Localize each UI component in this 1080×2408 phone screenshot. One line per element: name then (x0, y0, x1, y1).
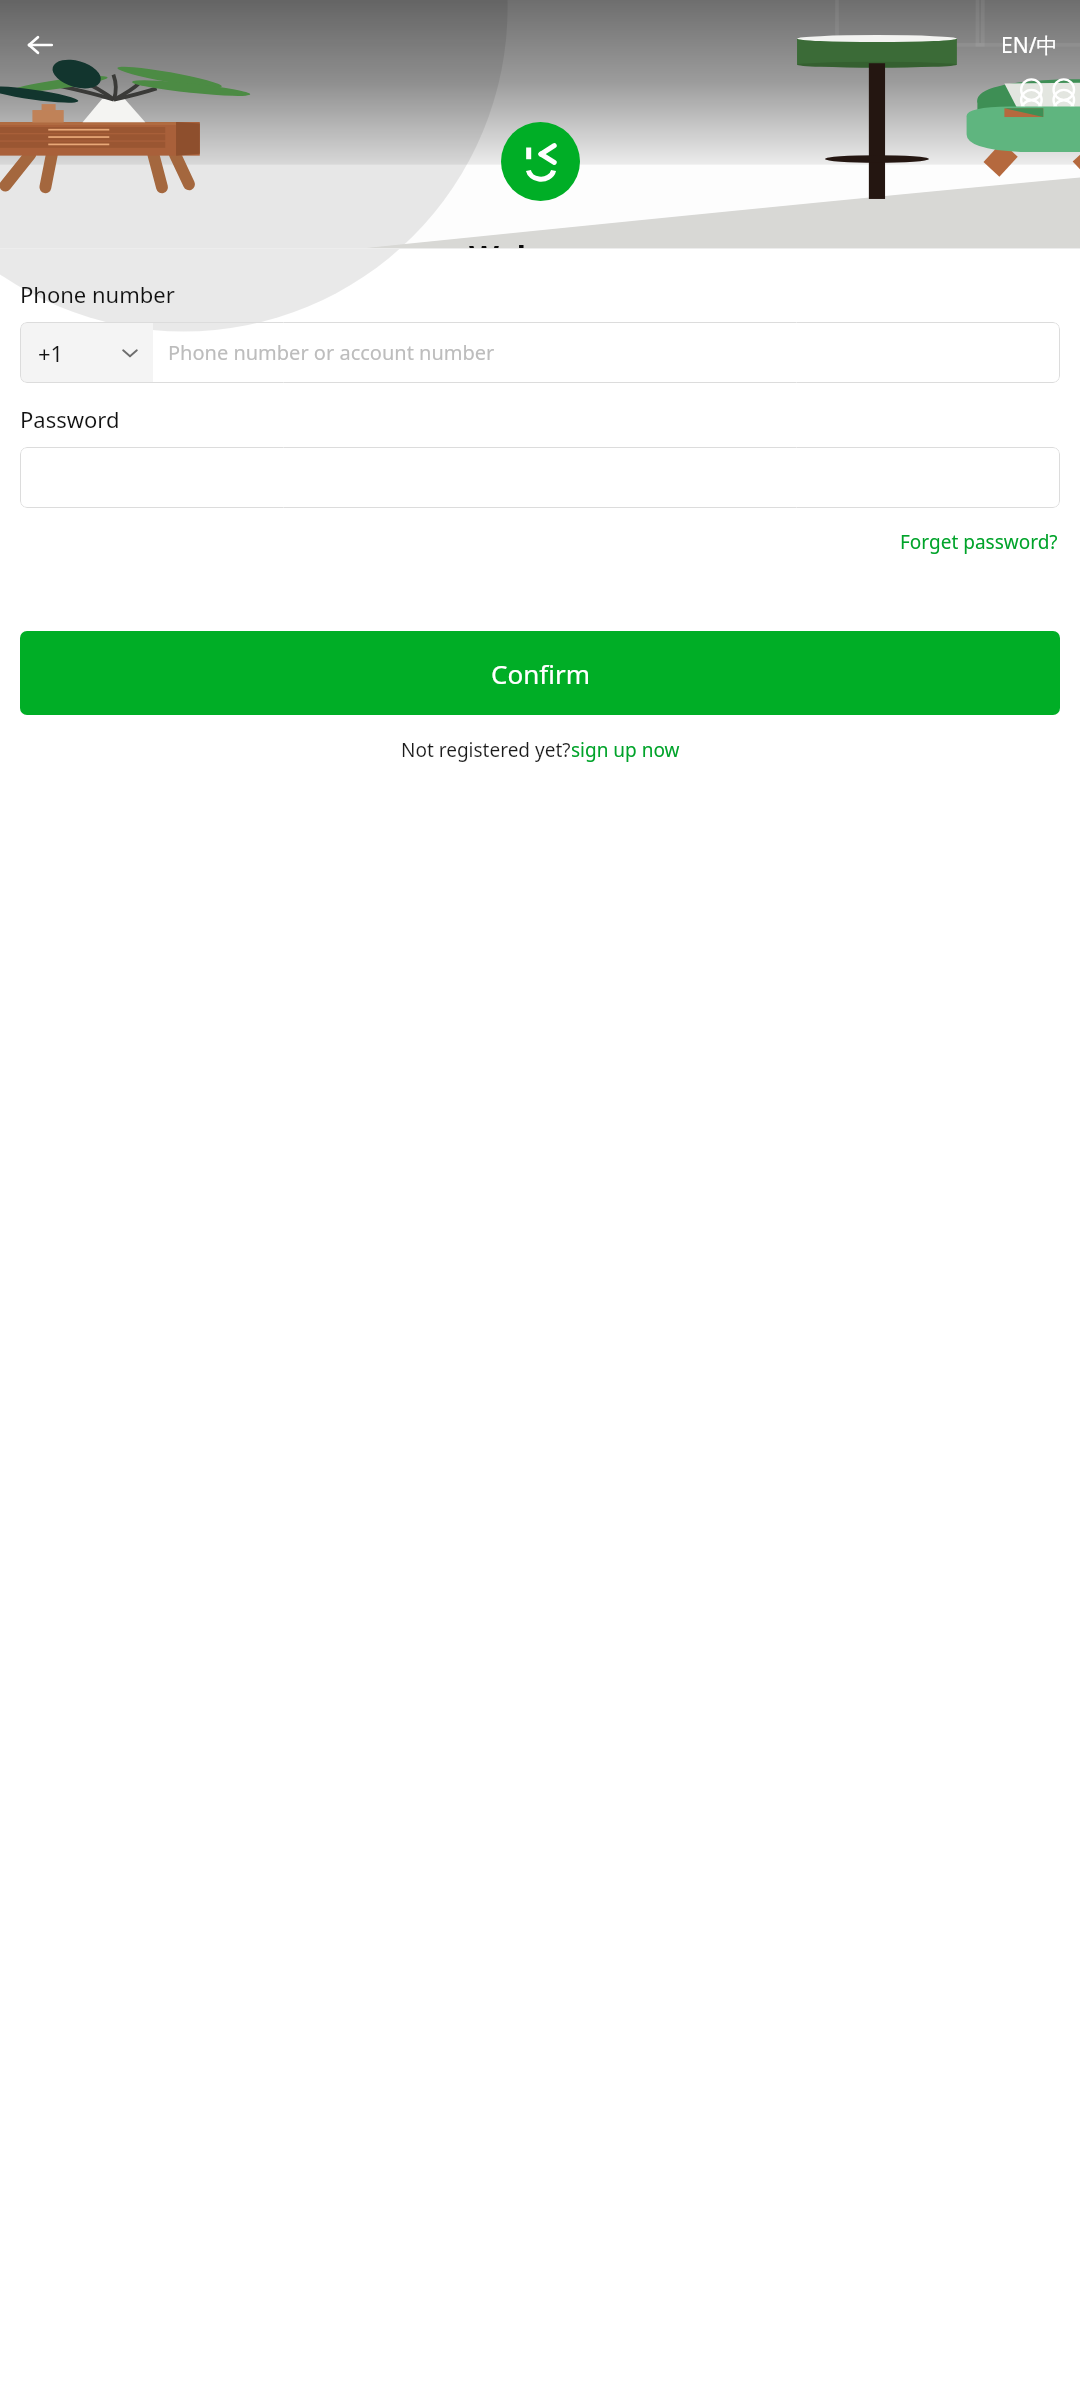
staticText: +1 (38, 338, 64, 368)
staticText: EN/中 (1001, 31, 1058, 60)
button[interactable]: sign up now (571, 737, 680, 763)
button[interactable]: Confirm (20, 631, 1060, 715)
staticText: Welcome (469, 235, 611, 249)
button[interactable]: EN/中 (991, 25, 1068, 66)
staticText: Password (20, 404, 120, 434)
button[interactable]: +1 (21, 323, 153, 382)
staticText: Phone number or account number (168, 339, 495, 366)
button[interactable]: Phone number or account number (154, 322, 1060, 383)
staticText: Forget password? (900, 529, 1058, 555)
staticText: Confirm (491, 656, 590, 691)
staticText: Phone number (20, 279, 175, 309)
button[interactable] (20, 447, 1060, 508)
staticText: Not registered yet? (401, 737, 571, 763)
button[interactable]: Forget password? (898, 525, 1060, 559)
staticText: sign up now (571, 737, 680, 763)
button[interactable]: Back (12, 17, 68, 73)
